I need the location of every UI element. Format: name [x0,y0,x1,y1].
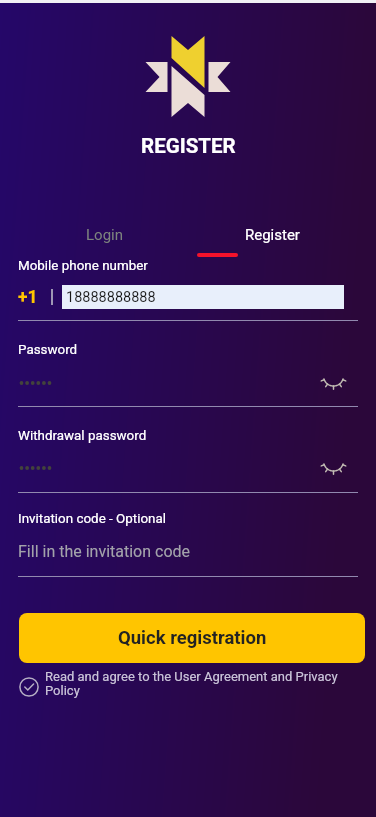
button[interactable]: Show password [318,367,348,397]
staticText: Register [245,226,300,244]
staticText: Password [18,342,78,358]
button[interactable]: Quick registration [19,613,365,663]
button[interactable]: Read and agree to the User Agreement and… [19,669,359,699]
staticText: Read and agree to the User Agreement and… [45,669,348,699]
staticText: REGISTER [141,134,236,158]
staticText: +1 [18,287,38,308]
button[interactable]: Show withdrawal password [318,452,348,482]
staticText: Quick registration [118,627,267,649]
staticText: Withdrawal password [18,428,147,444]
staticText: Mobile phone number [18,258,148,274]
staticText: Invitation code - Optional [18,511,167,527]
staticText: 18888888888 [66,289,156,306]
button[interactable]: Login [62,223,146,247]
button[interactable]: Register [230,223,314,247]
staticText: Fill in the invitation code [18,542,191,561]
staticText: Login [86,226,123,244]
